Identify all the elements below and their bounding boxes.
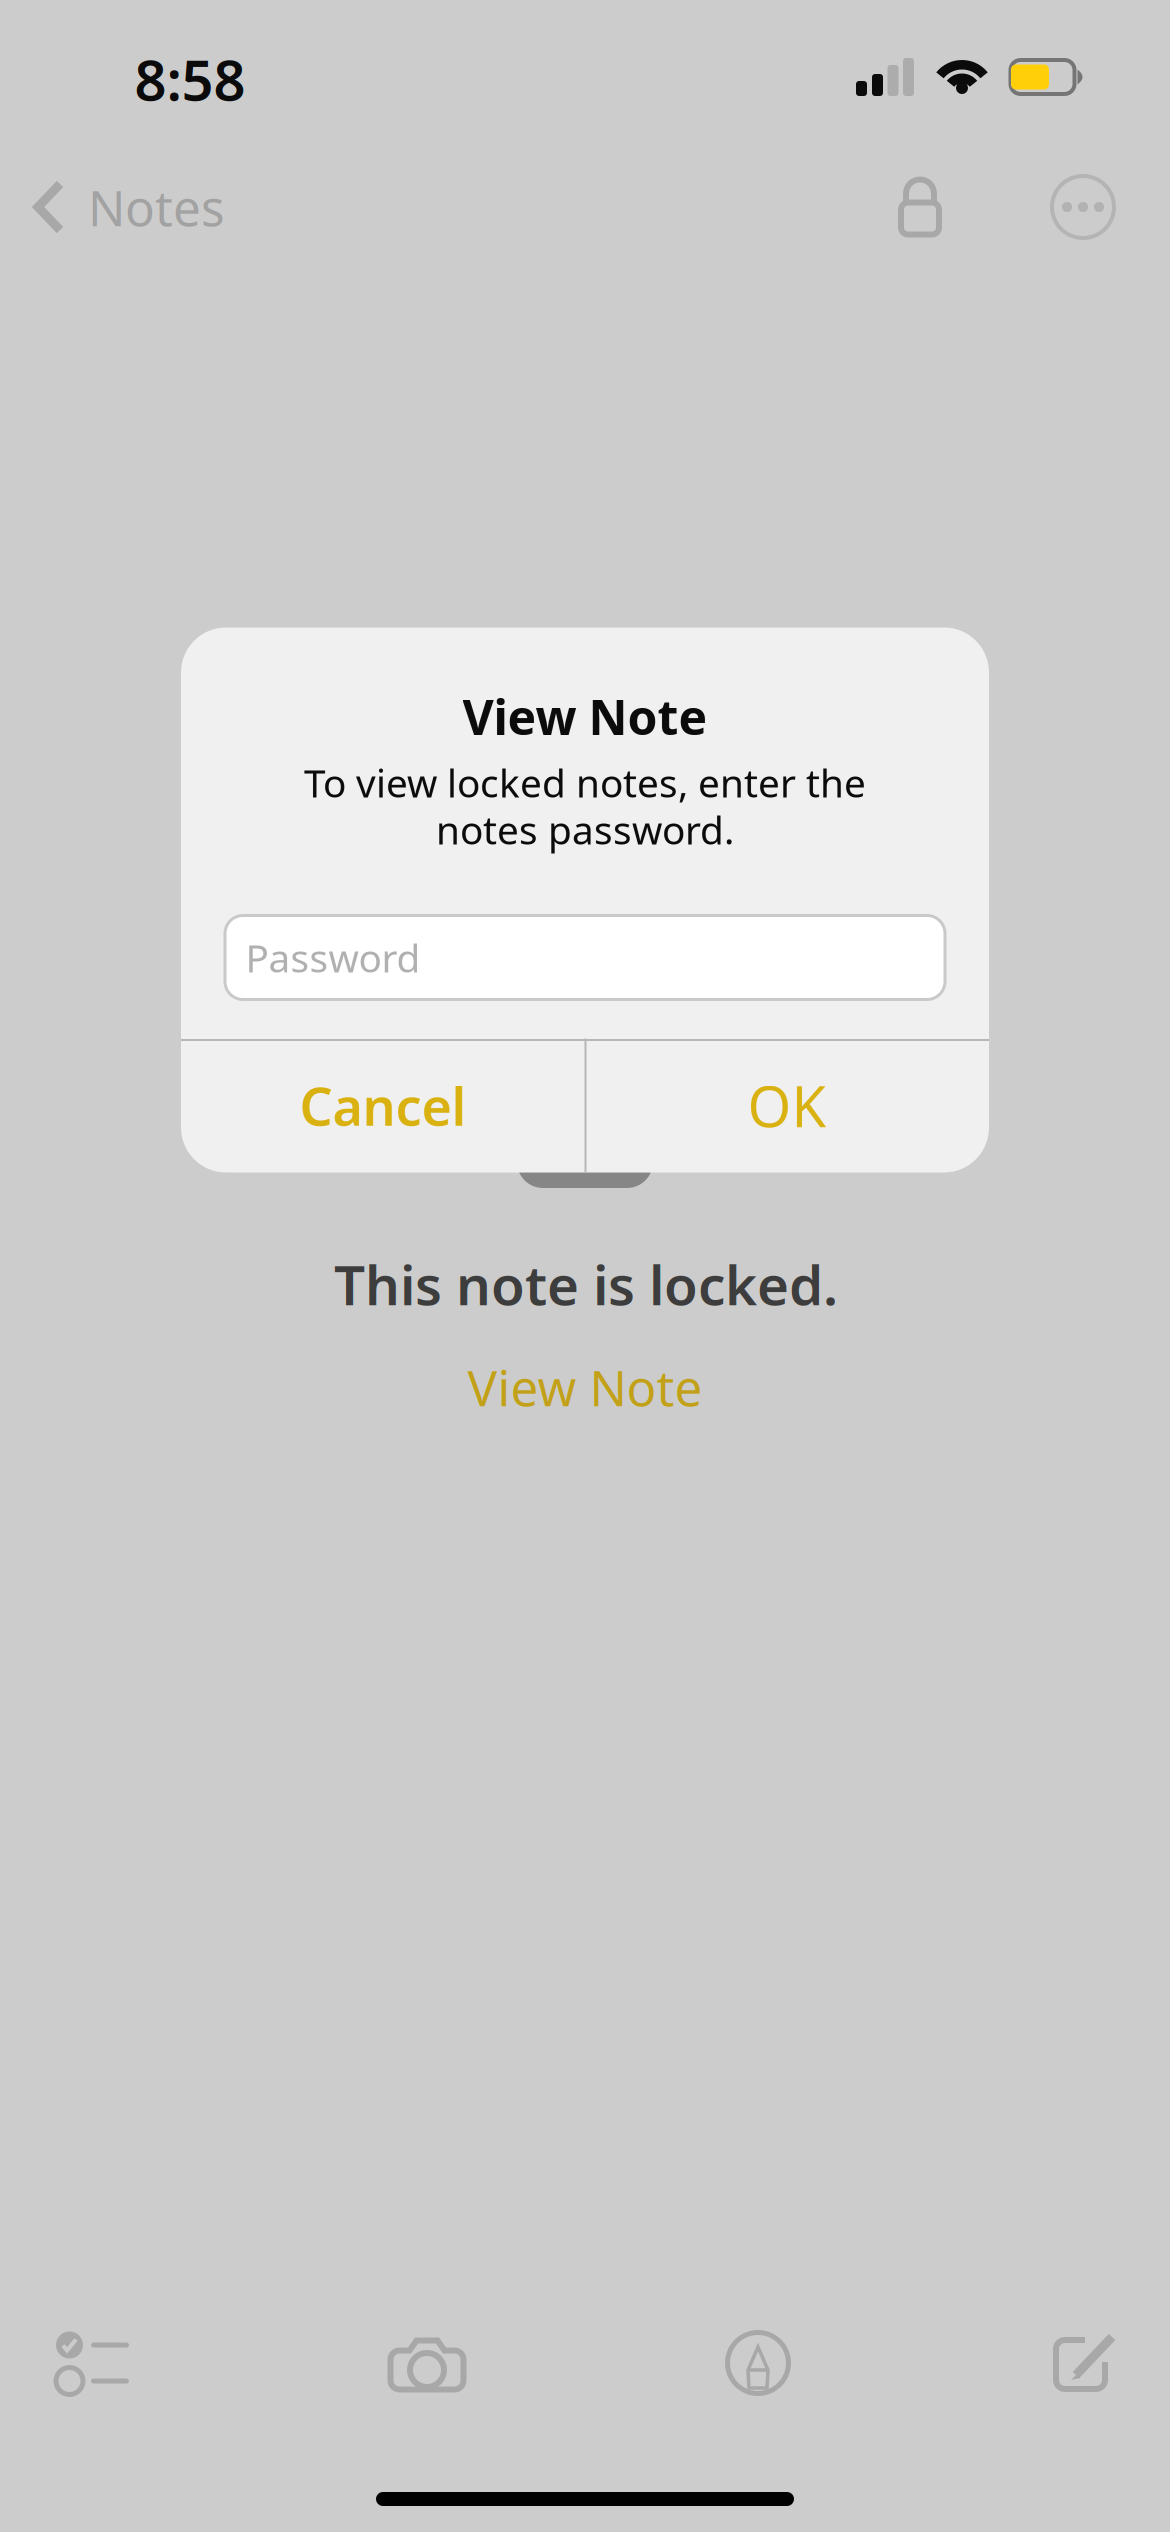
staticText: Cancel: [299, 1071, 466, 1140]
staticText: Notes: [88, 174, 225, 240]
staticText: OK: [747, 1068, 826, 1143]
staticText: 8:58: [134, 42, 245, 116]
button[interactable]: OK: [585, 1039, 988, 1172]
button[interactable]: Lock: [872, 150, 968, 263]
button[interactable]: Camera: [363, 2313, 490, 2416]
button[interactable]: Checklist: [32, 2306, 152, 2420]
staticText: Password: [245, 932, 420, 983]
button[interactable]: New Note: [1026, 2308, 1136, 2418]
button[interactable]: View Note: [435, 1338, 734, 1436]
staticText: View Note: [462, 685, 707, 748]
button[interactable]: Notes: [3, 150, 249, 264]
staticText: notes password.: [436, 804, 734, 855]
button[interactable]: More: [1025, 149, 1141, 265]
button[interactable]: Cancel: [181, 1039, 584, 1172]
staticText: This note is locked.: [334, 1248, 838, 1320]
staticText: To view locked notes, enter the: [304, 757, 866, 808]
staticText: View Note: [467, 1354, 702, 1420]
button[interactable]: Markup: [701, 2306, 815, 2420]
